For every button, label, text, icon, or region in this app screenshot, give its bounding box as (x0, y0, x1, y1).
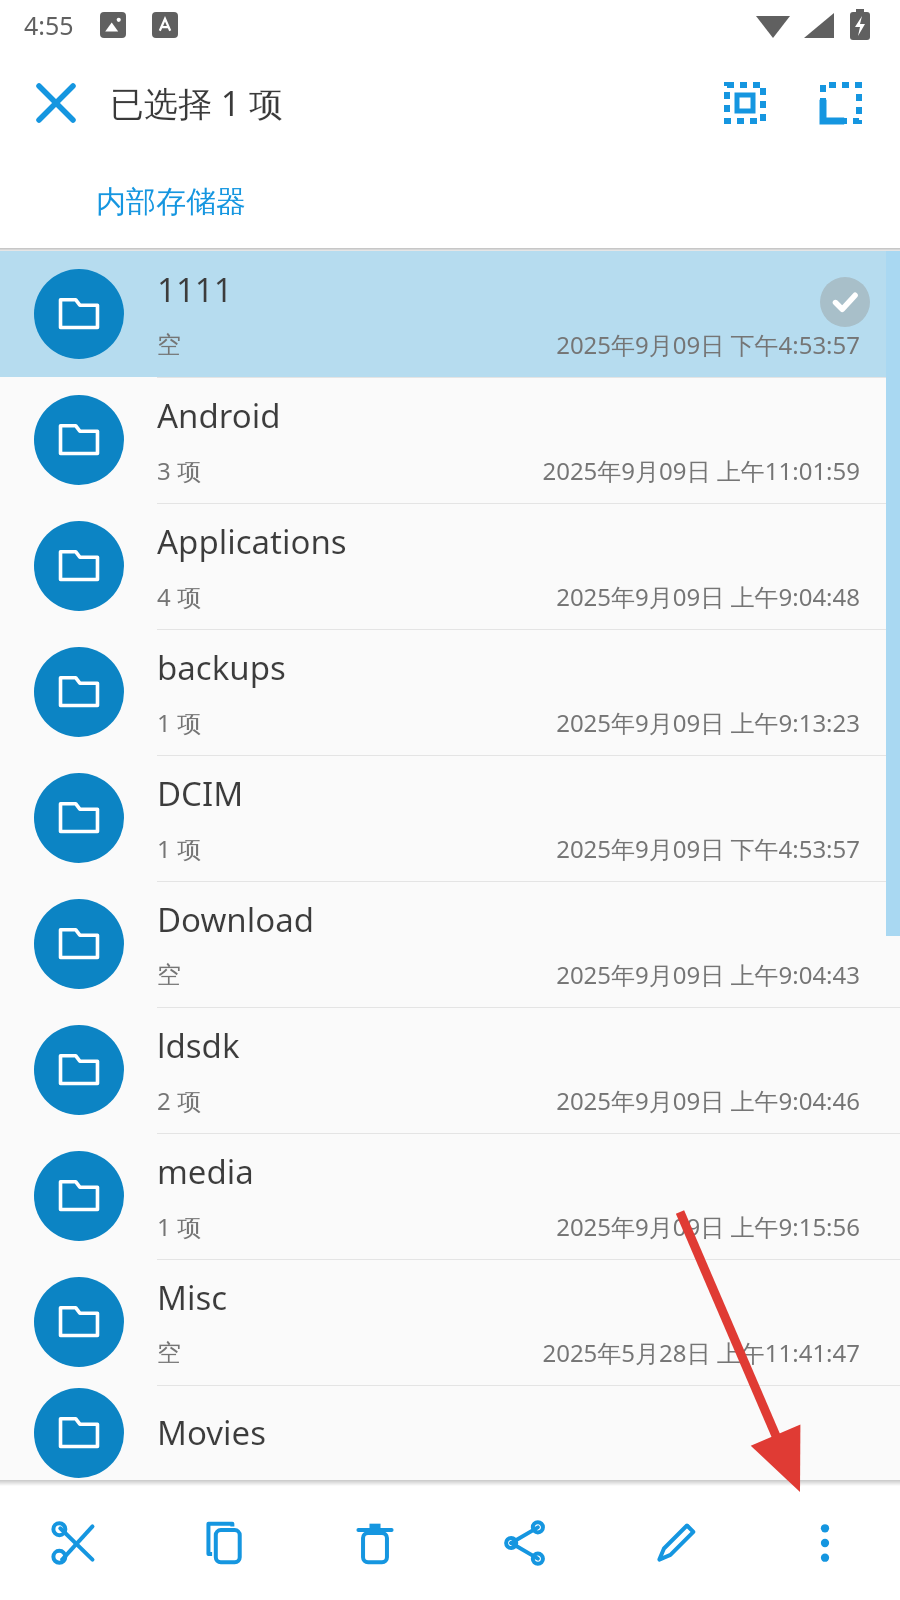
button[interactable]: Misc (0, 1259, 900, 1385)
button[interactable]: Rename (600, 1486, 750, 1600)
staticText: 4:55 (24, 8, 74, 42)
button[interactable]: backups (0, 629, 900, 755)
staticText: 已选择 1 项 (110, 80, 284, 126)
staticText: 4 项 (157, 580, 201, 613)
staticText: 2025年9月09日 上午11:01:59 (201, 454, 860, 487)
staticText: 空 (157, 960, 181, 990)
button[interactable]: 1111 (0, 251, 900, 377)
staticText: 1 项 (157, 706, 201, 739)
staticText: 1 项 (157, 1210, 201, 1243)
button[interactable]: 内部存储器 (96, 183, 246, 221)
staticText: 2025年5月28日 上午11:41:47 (181, 1336, 860, 1369)
staticText: 空 (157, 1338, 181, 1368)
staticText: ldsdk (157, 1023, 240, 1068)
button[interactable]: ldsdk (0, 1007, 900, 1133)
button[interactable]: Applications (0, 503, 900, 629)
staticText: 2025年9月09日 下午4:53:57 (181, 328, 860, 361)
button[interactable]: Delete (300, 1486, 450, 1600)
button[interactable]: More options (750, 1486, 900, 1600)
button[interactable]: Movies (0, 1385, 900, 1480)
button[interactable]: DCIM (0, 755, 900, 881)
staticText: 内部存储器 (96, 183, 246, 221)
button[interactable]: Select all (704, 62, 786, 144)
staticText: DCIM (157, 771, 244, 816)
button[interactable]: Android (0, 377, 900, 503)
staticText: 2025年9月09日 上午9:04:46 (201, 1084, 860, 1117)
staticText: 2025年9月09日 上午9:15:56 (201, 1210, 860, 1243)
button[interactable]: Invert selection (800, 62, 882, 144)
button[interactable]: Share (450, 1486, 600, 1600)
staticText: Applications (157, 519, 347, 564)
staticText: 空 (157, 330, 181, 360)
staticText: Download (157, 897, 315, 942)
button[interactable]: Copy (150, 1486, 300, 1600)
staticText: 2025年9月09日 下午4:53:57 (201, 832, 860, 865)
button[interactable]: media (0, 1133, 900, 1259)
staticText: 2 项 (157, 1084, 201, 1117)
staticText: 1 项 (157, 832, 201, 865)
staticText: Misc (157, 1275, 228, 1320)
staticText: Android (157, 393, 281, 438)
staticText: 2025年9月09日 上午9:04:48 (201, 580, 860, 613)
button[interactable]: Cut (0, 1486, 150, 1600)
staticText: 3 项 (157, 454, 201, 487)
button[interactable]: Download (0, 881, 900, 1007)
staticText: backups (157, 645, 286, 690)
staticText: 2025年9月09日 上午9:13:23 (201, 706, 860, 739)
staticText: 2025年9月09日 上午9:04:43 (181, 958, 860, 991)
staticText: media (157, 1149, 254, 1194)
staticText: Movies (157, 1410, 266, 1455)
button[interactable]: Close selection (20, 67, 92, 139)
staticText: 1111 (157, 267, 233, 312)
